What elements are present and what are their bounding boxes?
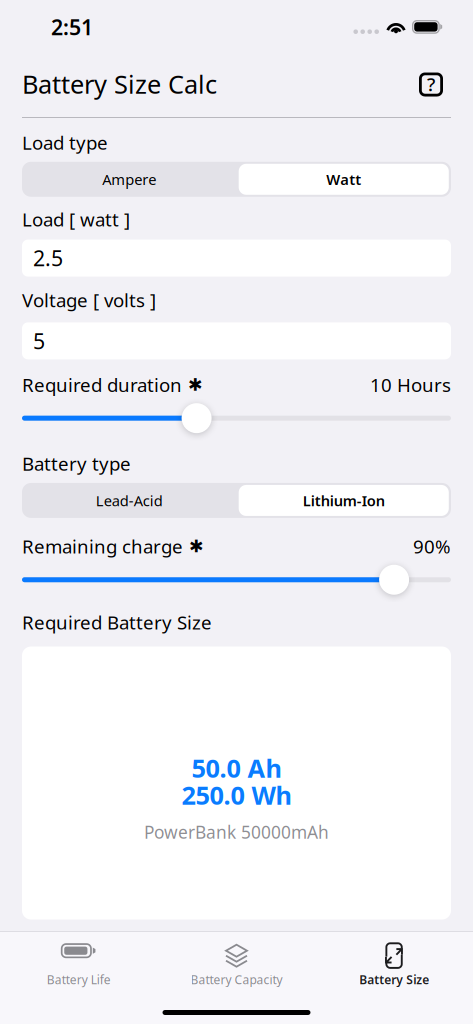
button[interactable]: Watt xyxy=(236,162,451,197)
staticText: Load [ watt ] xyxy=(22,207,130,232)
staticText: Battery Size xyxy=(359,972,429,988)
staticText: Battery type xyxy=(22,451,131,476)
staticText: 2:51 xyxy=(51,13,93,41)
staticText: 5 xyxy=(33,327,45,355)
staticText: ✱ xyxy=(182,375,203,395)
staticText: PowerBank 50000mAh xyxy=(144,820,329,843)
staticText: Voltage [ volts ] xyxy=(22,288,156,312)
button[interactable]: Battery Capacity xyxy=(158,942,315,994)
staticText: Battery Size Calc xyxy=(22,67,217,101)
button[interactable]: Lead-Acid xyxy=(22,483,236,518)
staticText: Remaining charge xyxy=(22,534,183,559)
staticText: Lithium-Ion xyxy=(303,491,385,510)
button[interactable]: Battery Size xyxy=(315,942,473,994)
staticText: Required Battery Size xyxy=(22,610,212,634)
button[interactable]: Battery Life xyxy=(0,942,158,994)
staticText: 10 Hours xyxy=(370,372,451,397)
staticText: Load type xyxy=(22,130,108,155)
staticText: Battery Life xyxy=(47,972,111,988)
button[interactable]: Ampere xyxy=(22,162,236,197)
staticText: ✱ xyxy=(183,536,204,556)
staticText: Ampere xyxy=(102,170,156,189)
button[interactable]: Lithium-Ion xyxy=(236,483,451,518)
staticText: Lead-Acid xyxy=(96,491,163,510)
staticText: 90% xyxy=(413,534,451,559)
staticText: Watt xyxy=(326,170,361,189)
staticText: Battery Capacity xyxy=(190,972,282,988)
button[interactable]: Help xyxy=(419,67,451,103)
staticText: Required duration xyxy=(22,372,182,397)
staticText: 2.5 xyxy=(33,244,63,272)
staticText: 250.0 Wh xyxy=(181,778,291,812)
staticText: 50.0 Ah xyxy=(191,751,281,785)
staticText: ? xyxy=(427,72,435,96)
